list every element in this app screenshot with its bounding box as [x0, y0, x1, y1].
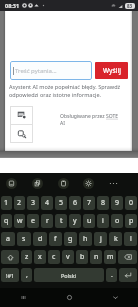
- button[interactable]: t: [55, 214, 67, 228]
- button[interactable]: [118, 250, 137, 264]
- button[interactable]: j: [94, 232, 107, 246]
- button[interactable]: e: [27, 214, 39, 228]
- button[interactable]: z: [21, 250, 32, 264]
- button[interactable]: i: [97, 214, 109, 228]
- staticText: Polski: [61, 272, 77, 279]
- button[interactable]: [119, 268, 137, 282]
- button[interactable]: Szukaj: [10, 125, 33, 143]
- staticText: u: [87, 216, 92, 226]
- staticText: z: [25, 252, 29, 262]
- staticText: b: [80, 252, 85, 262]
- button[interactable]: f: [49, 232, 62, 246]
- staticText: 1: [4, 198, 9, 208]
- button[interactable]: Ostatnie: [0, 288, 46, 307]
- button[interactable]: 4: [41, 196, 53, 210]
- staticText: 08:31: [5, 2, 20, 9]
- button[interactable]: 9: [111, 196, 123, 210]
- staticText: c: [52, 252, 56, 262]
- staticText: w: [17, 216, 23, 226]
- staticText: 8: [101, 198, 106, 208]
- staticText: 4: [45, 198, 50, 208]
- button[interactable]: Emoji: [6, 173, 32, 194]
- staticText: g: [68, 234, 73, 244]
- button[interactable]: Wyślij: [95, 62, 128, 79]
- button[interactable]: b: [76, 250, 88, 264]
- staticText: x: [38, 252, 42, 262]
- button[interactable]: u: [83, 214, 95, 228]
- button[interactable]: 3: [27, 196, 39, 210]
- button[interactable]: Ukryj klawiaturę: [92, 288, 138, 307]
- button[interactable]: Ekran główny: [46, 288, 92, 307]
- staticText: 9: [115, 198, 120, 208]
- staticText: 5: [59, 198, 64, 208]
- staticText: Treść pytania...: [15, 67, 57, 75]
- button[interactable]: 8: [97, 196, 109, 210]
- button[interactable]: w: [14, 214, 25, 228]
- button[interactable]: 6: [69, 196, 81, 210]
- button[interactable]: k: [109, 232, 122, 246]
- button[interactable]: Więcej: [108, 173, 133, 194]
- staticText: v: [66, 252, 70, 262]
- staticText: SOTE: [106, 113, 119, 120]
- button[interactable]: !#1: [1, 268, 19, 282]
- staticText: 3: [31, 198, 36, 208]
- button[interactable]: Zrzut ekranu: [10, 106, 33, 124]
- staticText: 6: [73, 198, 78, 208]
- button[interactable]: s: [17, 232, 31, 246]
- staticText: m: [107, 252, 114, 262]
- staticText: l: [130, 234, 132, 244]
- staticText: d: [38, 234, 43, 244]
- staticText: 0: [129, 198, 134, 208]
- staticText: .: [111, 270, 113, 280]
- staticText: h: [83, 234, 88, 244]
- button[interactable]: r: [41, 214, 53, 228]
- staticText: o: [115, 216, 120, 226]
- staticText: i: [102, 216, 104, 226]
- button[interactable]: 7: [83, 196, 95, 210]
- button[interactable]: .: [106, 268, 117, 282]
- staticText: Asystent AI może popełniać błędy. Sprawd…: [9, 83, 126, 99]
- button[interactable]: Ustawienia: [83, 173, 108, 194]
- button[interactable]: c: [48, 250, 60, 264]
- button[interactable]: 1: [1, 196, 12, 210]
- staticText: j: [100, 234, 102, 244]
- button[interactable]: n: [90, 250, 102, 264]
- button[interactable]: y: [69, 214, 81, 228]
- staticText: 7: [87, 198, 92, 208]
- button[interactable]: o: [111, 214, 123, 228]
- staticText: 2: [17, 198, 22, 208]
- staticText: !#1: [6, 272, 15, 279]
- button[interactable]: 2: [14, 196, 25, 210]
- button[interactable]: a: [1, 232, 15, 246]
- staticText: t: [60, 216, 63, 226]
- staticText: Wyślij: [103, 66, 121, 75]
- staticText: AI: [60, 120, 65, 127]
- staticText: y: [73, 216, 77, 226]
- button[interactable]: v: [62, 250, 74, 264]
- button[interactable]: 5: [55, 196, 67, 210]
- staticText: a: [6, 234, 10, 244]
- button[interactable]: m: [104, 250, 116, 264]
- button[interactable]: 0: [125, 196, 137, 210]
- button[interactable]: h: [79, 232, 92, 246]
- button[interactable]: p: [125, 214, 137, 228]
- button[interactable]: q: [1, 214, 12, 228]
- button[interactable]: x: [34, 250, 46, 264]
- staticText: n: [94, 252, 99, 262]
- staticText: Obsługiwane przez: [60, 113, 106, 120]
- button[interactable]: Schowek: [58, 173, 83, 194]
- button[interactable]: g: [64, 232, 77, 246]
- button[interactable]: Treść pytania...: [10, 61, 92, 80]
- button[interactable]: [1, 250, 19, 264]
- button[interactable]: GIF: [32, 173, 58, 194]
- button[interactable]: ,: [21, 268, 32, 282]
- staticText: q: [4, 216, 9, 226]
- staticText: k: [114, 234, 118, 244]
- staticText: e: [31, 216, 35, 226]
- staticText: p: [129, 216, 134, 226]
- staticText: s: [22, 234, 26, 244]
- button[interactable]: d: [33, 232, 47, 246]
- button[interactable]: l: [124, 232, 137, 246]
- staticText: 83: [127, 3, 133, 9]
- button[interactable]: Polski: [34, 268, 104, 282]
